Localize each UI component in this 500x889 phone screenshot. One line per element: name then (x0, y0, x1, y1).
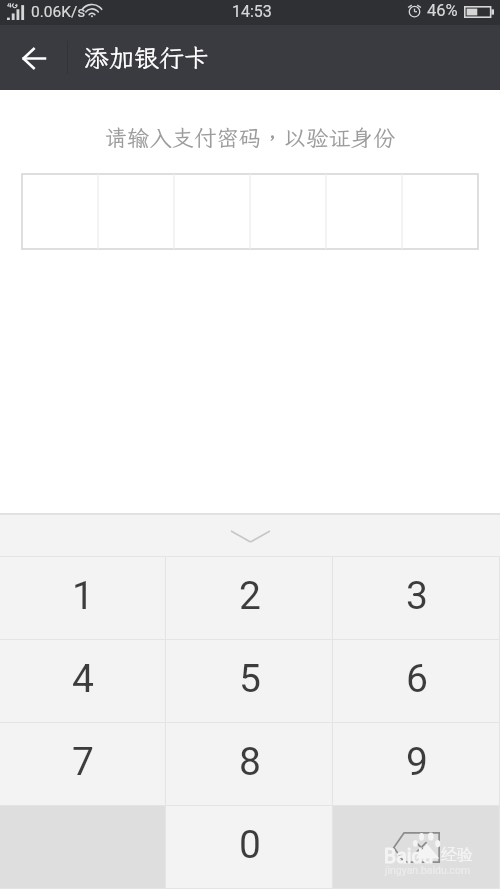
button[interactable]: 0 (166, 806, 333, 889)
button[interactable]: 1 (0, 557, 166, 640)
staticText: 1 (72, 573, 94, 619)
staticText: 添加银行卡 (84, 41, 210, 74)
staticText: 7 (72, 739, 94, 785)
button[interactable]: 6 (333, 640, 500, 723)
button[interactable] (22, 174, 478, 249)
button[interactable]: Backspace (333, 806, 500, 889)
staticText: 14:53 (232, 2, 272, 21)
button[interactable]: 2 (166, 557, 333, 640)
staticText: 4 (72, 656, 94, 702)
staticText: 0 (239, 822, 261, 868)
staticText: 2 (239, 573, 261, 619)
staticText: 46% (427, 1, 458, 20)
button[interactable]: 5 (166, 640, 333, 723)
staticText: 8 (239, 739, 261, 785)
button[interactable]: 8 (166, 723, 333, 806)
staticText: 请输入支付密码，以验证身份 (0, 123, 500, 153)
staticText: 3 (406, 573, 428, 619)
staticText: jingyan.baidu.com (385, 864, 471, 876)
staticText: 5 (239, 656, 261, 702)
button[interactable]: 3 (333, 557, 500, 640)
button[interactable]: Back (0, 25, 67, 90)
button[interactable]: 7 (0, 723, 166, 806)
button[interactable]: 9 (333, 723, 500, 806)
staticText: 9 (406, 739, 428, 785)
staticText: 6 (406, 656, 428, 702)
staticText: 经验 (441, 845, 473, 865)
button[interactable]: 4 (0, 640, 166, 723)
staticText: 0.06K/s (31, 3, 86, 21)
button[interactable]: Hide keyboard (0, 513, 500, 557)
staticText: Baidu (384, 845, 434, 868)
